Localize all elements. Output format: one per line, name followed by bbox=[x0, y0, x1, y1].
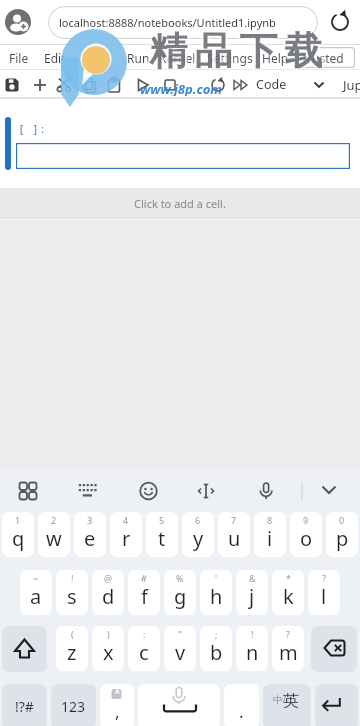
button[interactable]: 1 bbox=[2, 512, 34, 557]
button[interactable]: Settings bbox=[207, 45, 277, 70]
button[interactable] bbox=[255, 480, 277, 502]
button[interactable] bbox=[311, 626, 357, 672]
staticText: 7 bbox=[231, 514, 237, 526]
button[interactable]: ! bbox=[236, 626, 268, 671]
staticText: Edit bbox=[44, 50, 66, 66]
button[interactable]: 8 bbox=[254, 512, 286, 557]
staticText: j bbox=[249, 583, 255, 610]
button[interactable]: View bbox=[81, 45, 119, 70]
button[interactable]: ( bbox=[56, 626, 88, 671]
staticText: f bbox=[141, 583, 148, 610]
staticText: x bbox=[103, 639, 114, 666]
button[interactable] bbox=[138, 684, 220, 726]
staticText: * bbox=[286, 572, 291, 584]
button[interactable] bbox=[3, 76, 21, 94]
button[interactable] bbox=[2, 626, 47, 672]
button[interactable]: 5 bbox=[146, 512, 178, 557]
button[interactable] bbox=[209, 76, 227, 94]
staticText: e bbox=[84, 525, 96, 552]
staticText: b bbox=[210, 639, 223, 666]
button[interactable]: " bbox=[164, 626, 196, 671]
button[interactable]: 0 bbox=[326, 512, 358, 557]
staticText: v bbox=[175, 639, 186, 666]
button[interactable] bbox=[133, 76, 151, 94]
button[interactable]: @ bbox=[92, 570, 124, 615]
staticText: 2 bbox=[51, 514, 57, 526]
button[interactable]: Code bbox=[256, 70, 296, 99]
button[interactable]: 9 bbox=[290, 512, 322, 557]
staticText: g bbox=[174, 583, 187, 610]
button[interactable]: 4 bbox=[110, 512, 142, 557]
button[interactable] bbox=[137, 480, 160, 503]
staticText: y bbox=[193, 525, 204, 552]
button[interactable] bbox=[17, 480, 39, 502]
button[interactable] bbox=[31, 76, 49, 94]
button[interactable]: Edit bbox=[44, 45, 82, 70]
staticText: n bbox=[246, 639, 259, 666]
button[interactable]: Click to add a cell. bbox=[0, 188, 360, 218]
button[interactable]: . bbox=[224, 684, 259, 726]
button[interactable] bbox=[105, 76, 123, 94]
button[interactable] bbox=[5, 9, 31, 35]
button[interactable]: ' bbox=[200, 570, 232, 615]
button[interactable]: 123 bbox=[51, 684, 96, 726]
button[interactable]: ? bbox=[308, 570, 340, 615]
staticText: a bbox=[30, 583, 42, 610]
button[interactable]: % bbox=[164, 570, 196, 615]
staticText: ' bbox=[215, 572, 218, 584]
staticText: Click to add a cell. bbox=[134, 196, 226, 211]
button[interactable]: Help bbox=[262, 45, 300, 70]
button[interactable] bbox=[326, 8, 354, 36]
button[interactable]: Run bbox=[127, 45, 157, 70]
button[interactable] bbox=[80, 76, 98, 94]
button[interactable]: ~ bbox=[20, 570, 52, 615]
button[interactable] bbox=[76, 480, 98, 502]
button[interactable] bbox=[315, 684, 358, 726]
staticText: o bbox=[300, 525, 313, 552]
button[interactable] bbox=[311, 76, 327, 92]
button[interactable]: 7 bbox=[218, 512, 250, 557]
button[interactable] bbox=[16, 143, 350, 169]
staticText: h bbox=[210, 583, 223, 610]
button[interactable]: ) bbox=[92, 626, 124, 671]
button[interactable]: & bbox=[236, 570, 268, 615]
staticText: l bbox=[321, 583, 327, 610]
button[interactable]: File bbox=[9, 45, 47, 70]
button[interactable]: localhost:8888/notebooks/Untitled1.ipynb bbox=[48, 6, 318, 39]
button[interactable]: ! bbox=[56, 570, 88, 615]
staticText: . bbox=[239, 700, 244, 723]
button[interactable] bbox=[318, 480, 340, 502]
staticText: 4 bbox=[123, 514, 129, 526]
button[interactable]: : bbox=[128, 626, 160, 671]
staticText: 英 bbox=[283, 691, 299, 711]
button[interactable]: Trusted bbox=[301, 45, 351, 70]
button[interactable]: * bbox=[272, 570, 304, 615]
button[interactable]: 中/ bbox=[263, 684, 311, 726]
staticText: Trusted bbox=[301, 50, 344, 66]
button[interactable]: Kernel bbox=[159, 45, 213, 70]
button[interactable]: # bbox=[128, 570, 160, 615]
button[interactable] bbox=[231, 76, 251, 96]
staticText: z bbox=[67, 639, 77, 666]
button[interactable]: ? bbox=[272, 626, 304, 671]
button[interactable]: ; bbox=[200, 626, 232, 671]
button[interactable]: 2 bbox=[38, 512, 70, 557]
button[interactable]: !?# bbox=[2, 684, 47, 726]
button[interactable] bbox=[195, 480, 217, 502]
staticText: 1 bbox=[15, 514, 21, 526]
button[interactable]: 6 bbox=[182, 512, 214, 557]
staticText: q bbox=[12, 525, 25, 552]
staticText: !?# bbox=[15, 697, 34, 716]
button[interactable]: A bbox=[100, 684, 134, 726]
staticText: 3 bbox=[87, 514, 93, 526]
staticText: % bbox=[176, 572, 184, 584]
staticText: : bbox=[143, 628, 146, 640]
button[interactable] bbox=[55, 76, 73, 94]
staticText: Run bbox=[127, 50, 150, 66]
staticText: ? bbox=[286, 628, 290, 640]
button[interactable] bbox=[161, 76, 179, 94]
staticText: 中/ bbox=[273, 693, 287, 706]
staticText: & bbox=[249, 572, 256, 584]
staticText: 6 bbox=[195, 514, 201, 526]
button[interactable]: 3 bbox=[74, 512, 106, 557]
